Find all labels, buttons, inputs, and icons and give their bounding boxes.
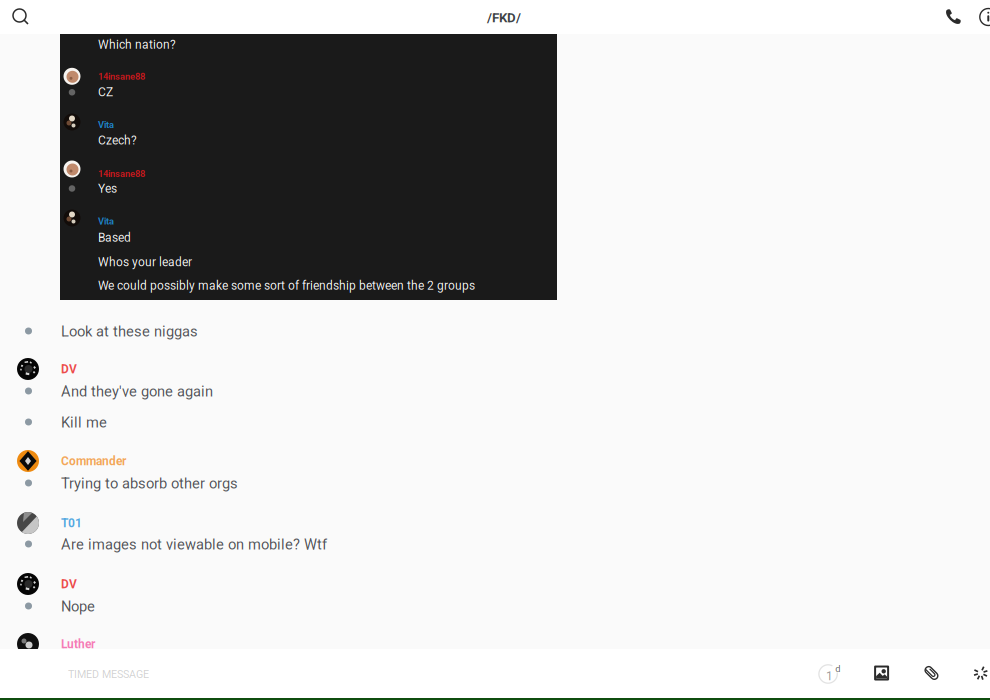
staticText: DV bbox=[61, 362, 77, 376]
staticText: /FKD/ bbox=[487, 10, 521, 26]
staticText: 1 bbox=[826, 669, 833, 683]
staticText: Nope bbox=[61, 598, 95, 615]
staticText: Are images not viewable on mobile? Wtf bbox=[61, 536, 327, 553]
staticText: Vita bbox=[98, 216, 114, 227]
staticText: 14insane88 bbox=[98, 71, 145, 82]
staticText: Luther bbox=[61, 637, 95, 651]
staticText: d bbox=[835, 663, 840, 674]
staticText: Trying to absorb other orgs bbox=[61, 475, 238, 492]
staticText: Based bbox=[98, 231, 131, 245]
staticText: 14insane88 bbox=[98, 168, 145, 179]
staticText: Czech? bbox=[98, 133, 137, 147]
staticText: Look at these niggas bbox=[61, 323, 198, 340]
button[interactable]: More options bbox=[963, 650, 990, 696]
button[interactable]: Message timer bbox=[810, 650, 854, 696]
staticText: We could possibly make some sort of frie… bbox=[98, 278, 475, 293]
staticText: TIMED MESSAGE bbox=[68, 668, 149, 680]
button[interactable]: Group info bbox=[971, 0, 990, 34]
staticText: Which nation? bbox=[98, 38, 176, 52]
staticText: And they've gone again bbox=[61, 383, 213, 400]
staticText: Vita bbox=[98, 119, 114, 130]
staticText: T01 bbox=[61, 516, 82, 530]
button[interactable]: Search bbox=[0, 0, 42, 34]
staticText: DV bbox=[61, 577, 77, 591]
staticText: Whos your leader bbox=[98, 255, 192, 269]
button[interactable]: Attach file bbox=[909, 650, 953, 696]
button[interactable]: Call bbox=[931, 0, 973, 34]
staticText: Yes bbox=[98, 182, 117, 196]
staticText: Kill me bbox=[61, 414, 107, 431]
staticText: Commander bbox=[61, 454, 126, 468]
staticText: CZ bbox=[98, 85, 113, 99]
button[interactable]: Photos bbox=[860, 650, 904, 696]
